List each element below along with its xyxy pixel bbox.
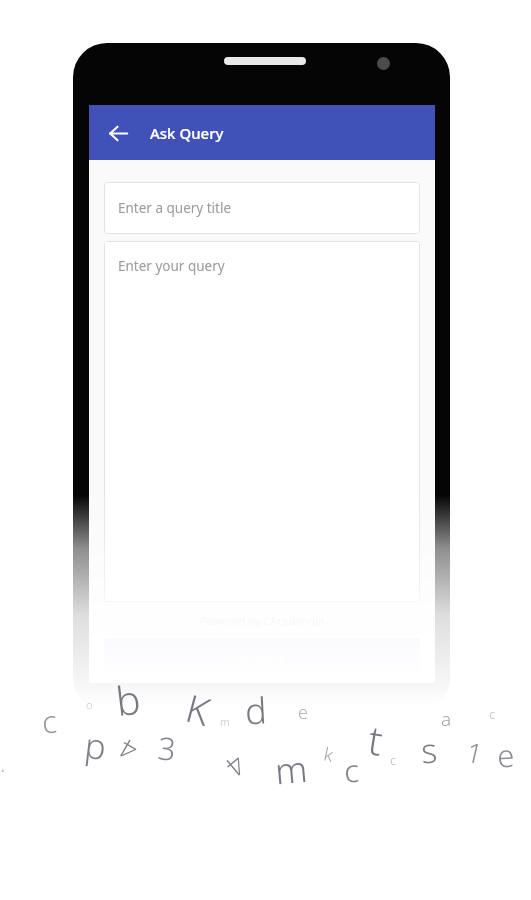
- staticText: d: [244, 685, 268, 736]
- staticText: a: [441, 706, 452, 732]
- staticText: c: [390, 751, 397, 769]
- staticText: t: [365, 711, 387, 767]
- staticText: m: [273, 744, 310, 795]
- staticText: b: [113, 671, 143, 727]
- staticText: c: [41, 699, 58, 742]
- button[interactable]: Back: [100, 115, 136, 151]
- staticText: Enter your query: [118, 257, 225, 275]
- staticText: .: [0, 748, 6, 778]
- staticText: 4: [218, 747, 254, 786]
- staticText: c: [343, 749, 360, 791]
- staticText: e: [298, 700, 308, 725]
- staticText: Enter a query title: [118, 199, 232, 217]
- staticText: 1: [463, 733, 487, 772]
- staticText: k: [321, 741, 335, 768]
- staticText: K: [181, 681, 216, 737]
- staticText: 3: [156, 726, 178, 770]
- staticText: 4: [112, 732, 143, 769]
- staticText: e: [496, 734, 516, 776]
- staticText: c: [489, 705, 496, 723]
- staticText: m: [220, 714, 230, 729]
- staticText: Ask Query: [150, 123, 224, 143]
- staticText: s: [419, 726, 439, 773]
- button[interactable]: Enter a query title: [104, 182, 420, 234]
- staticText: o: [86, 697, 93, 712]
- button[interactable]: Enter your query: [104, 241, 420, 602]
- staticText: p: [82, 721, 109, 771]
